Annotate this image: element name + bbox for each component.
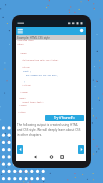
staticText: input {: [23, 70, 31, 73]
button[interactable]: Previous: [17, 145, 23, 154]
staticText: </style>: [22, 84, 32, 87]
staticText: }: [24, 80, 26, 83]
staticText: <title>Positive with CSS</title>: [22, 59, 59, 62]
button[interactable]: Try it Yourself »: [45, 115, 84, 121]
staticText: Example: HTML CSS style: [17, 36, 50, 40]
staticText: </html>: [18, 111, 26, 114]
button[interactable]: Search: [78, 27, 86, 35]
staticText: <body>: [19, 97, 26, 100]
staticText: <style>: [22, 66, 30, 69]
staticText: </head>: [20, 91, 28, 94]
staticText: The following output is created using HT…: [17, 123, 83, 136]
staticText: box-shadow:2px 2px 2px grey;: [26, 74, 58, 77]
staticText: <!DOCTYPE html>: [17, 39, 35, 42]
staticText: <head>: [20, 52, 27, 55]
button[interactable]: Menu: [16, 27, 25, 35]
staticText: <html>: [17, 43, 24, 46]
button[interactable]: Next: [78, 145, 84, 154]
staticText: Try it Yourself »: [54, 116, 75, 120]
staticText: </body>: [19, 104, 27, 107]
staticText: <input type="text">: [22, 101, 44, 104]
